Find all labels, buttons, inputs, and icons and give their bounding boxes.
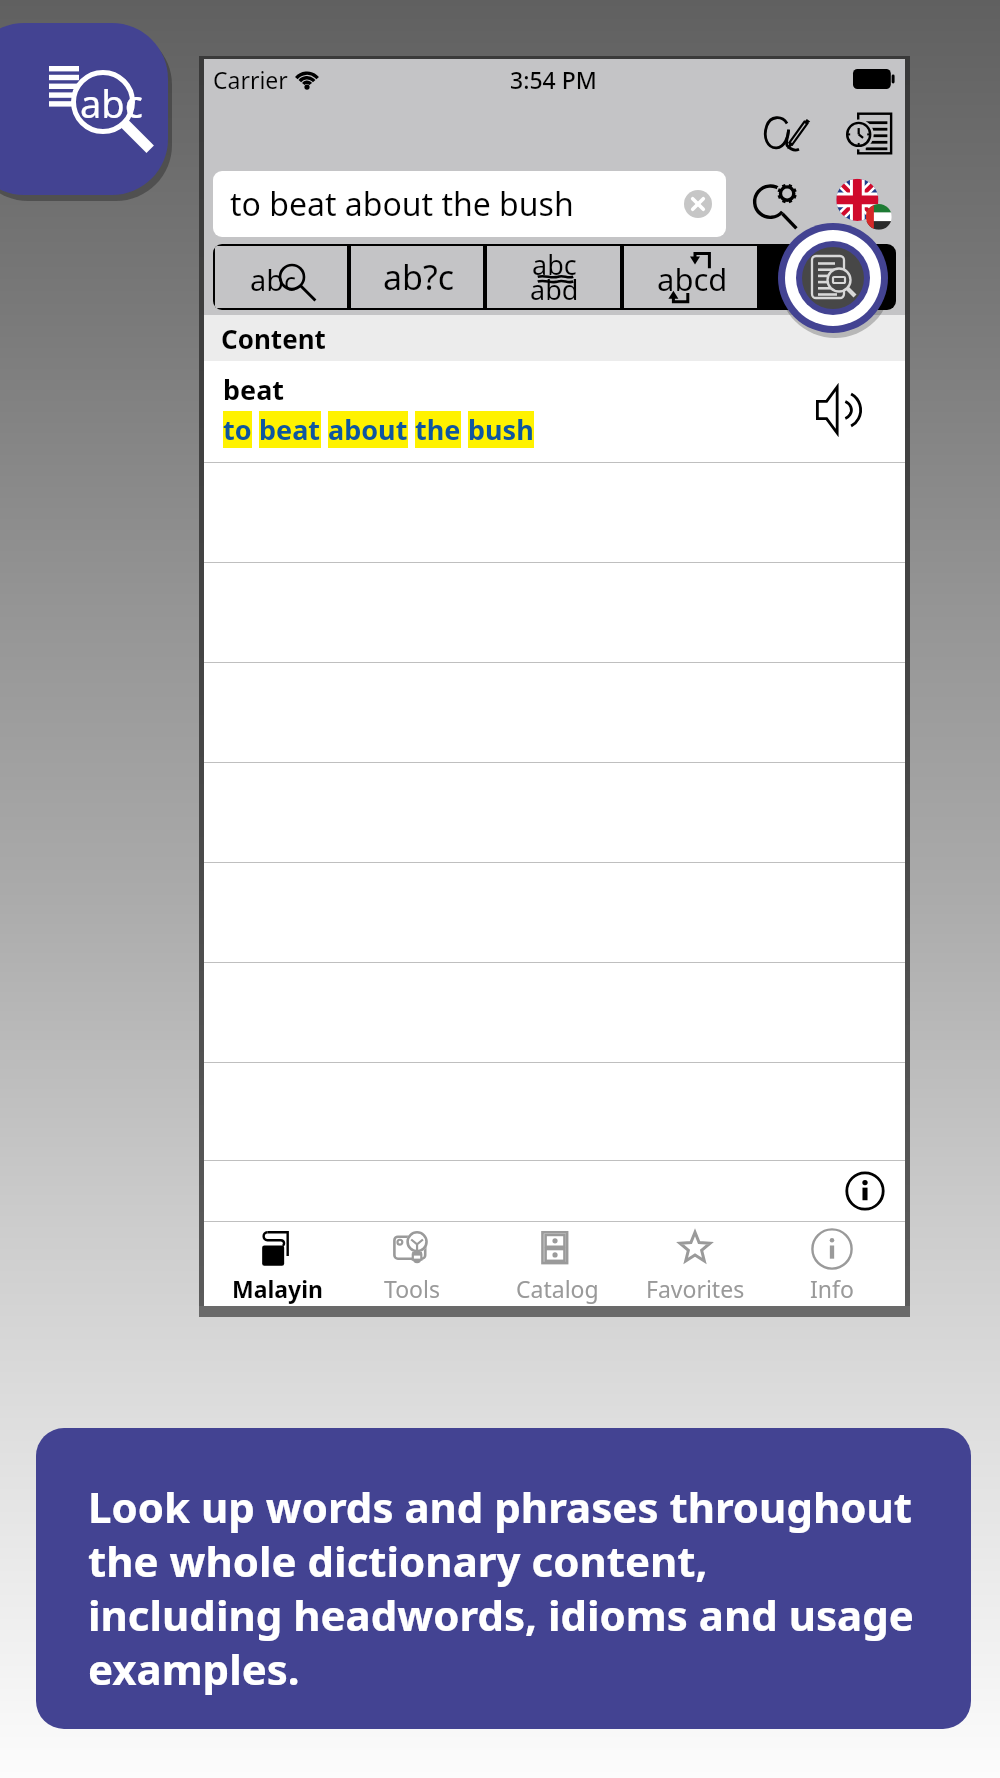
- button[interactable]: History: [838, 101, 900, 165]
- button[interactable]: Entry info: [844, 1170, 886, 1212]
- button[interactable]: Dictionary app icon: [0, 23, 168, 195]
- button[interactable]: Clear search: [684, 190, 712, 218]
- button[interactable]: Handwriting input: [752, 101, 820, 165]
- staticText: abd: [530, 271, 579, 308]
- staticText: c: [284, 264, 297, 298]
- button[interactable]: to beat about the bush: [213, 171, 726, 237]
- button[interactable]: beat: [204, 361, 905, 462]
- staticText: Tools: [384, 1273, 440, 1304]
- staticText: Info: [810, 1273, 854, 1304]
- staticText: to: [223, 411, 252, 448]
- button[interactable]: Full text search: [759, 244, 896, 310]
- button[interactable]: Language pair English Arabic: [826, 167, 902, 243]
- button[interactable]: abcd: [624, 246, 757, 308]
- button[interactable]: Tools: [347, 1222, 477, 1306]
- staticText: the: [415, 411, 461, 448]
- button[interactable]: Favorites: [630, 1222, 760, 1306]
- staticText: bush: [468, 411, 534, 448]
- staticText: abc: [80, 77, 143, 129]
- staticText: beat: [223, 371, 285, 408]
- staticText: to beat about the bush: [230, 182, 574, 226]
- staticText: abc: [532, 246, 577, 283]
- button[interactable]: abc-abd: [487, 246, 620, 308]
- button[interactable]: Play pronunciation: [816, 386, 862, 434]
- button[interactable]: abc-search: [215, 246, 347, 308]
- staticText: Malayin: [232, 1273, 324, 1304]
- staticText: about: [328, 411, 408, 448]
- button[interactable]: Catalog: [492, 1222, 622, 1306]
- staticText: Catalog: [516, 1273, 599, 1304]
- button[interactable]: Info: [767, 1222, 897, 1306]
- staticText: Content: [221, 321, 326, 356]
- staticText: Look up words and phrases throughout the…: [88, 1478, 914, 1698]
- staticText: ab: [250, 260, 285, 299]
- button[interactable]: Full text search button highlighted: [777, 222, 889, 334]
- staticText: abcd: [657, 258, 728, 300]
- button[interactable]: ab?c: [351, 246, 483, 308]
- staticText: beat: [259, 411, 321, 448]
- staticText: ab?c: [383, 254, 455, 300]
- button[interactable]: Advanced search: [744, 171, 814, 237]
- staticText: 3:54 PM: [510, 64, 597, 95]
- staticText: Favorites: [646, 1273, 745, 1304]
- staticText: Carrier: [213, 64, 288, 95]
- button[interactable]: Malayin: [213, 1222, 343, 1306]
